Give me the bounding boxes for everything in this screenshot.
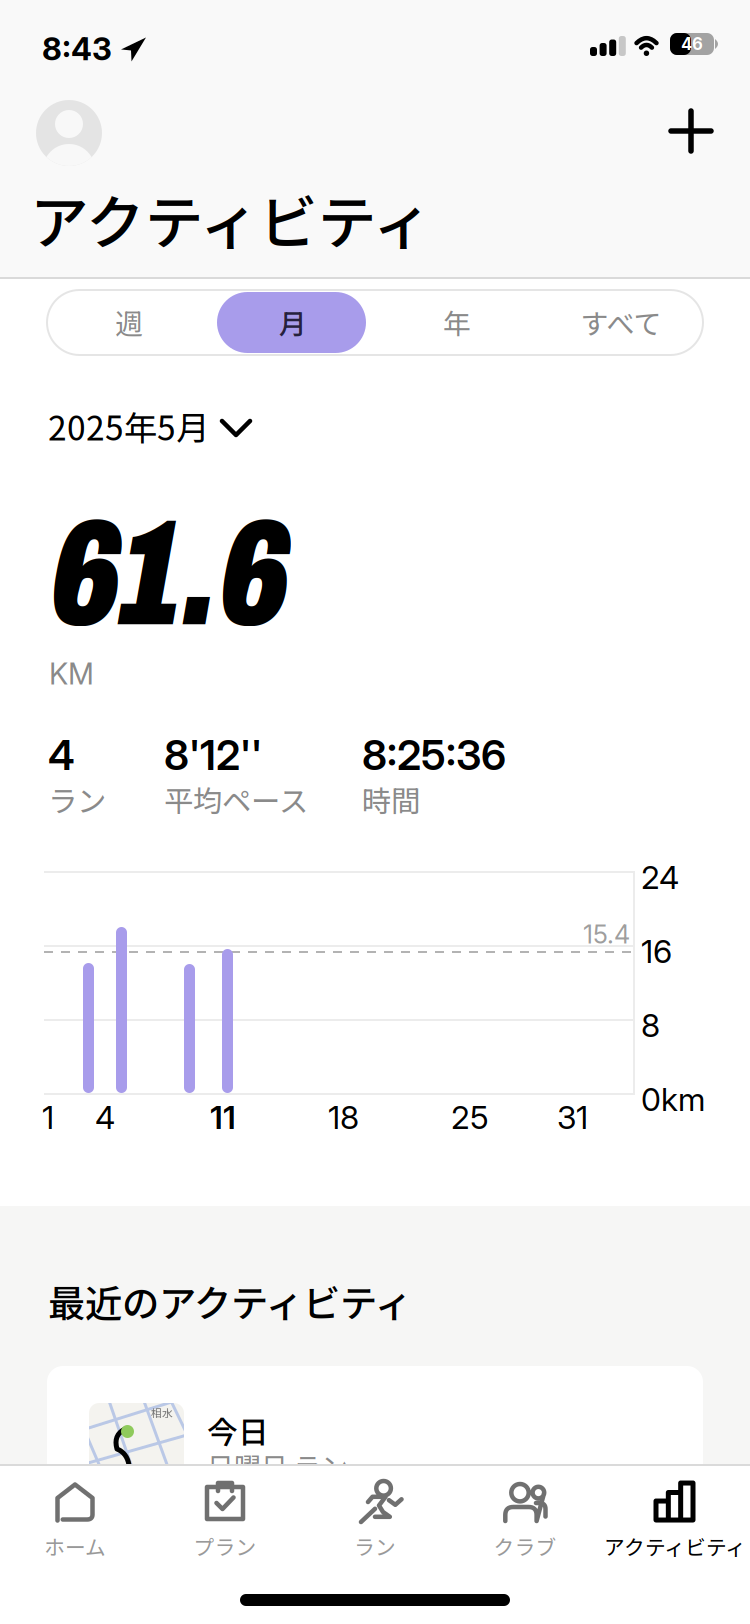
button[interactable]: ホーム xyxy=(0,1480,150,1592)
staticText: KM xyxy=(49,656,94,691)
button[interactable]: 相水 xyxy=(47,1366,703,1576)
staticText: 16 xyxy=(641,932,672,971)
staticText: 日曜日 ラン xyxy=(207,1446,348,1485)
staticText: 24 xyxy=(641,858,679,897)
staticText: 0km xyxy=(641,1080,705,1119)
button[interactable]: 2025年5月 xyxy=(30,397,268,455)
staticText: 8:25:36 xyxy=(362,730,506,780)
staticText: 年 xyxy=(443,302,471,342)
staticText: 8:43 xyxy=(42,30,112,68)
staticText: 25 xyxy=(451,1098,489,1137)
button[interactable]: プラン xyxy=(150,1480,300,1592)
staticText: 31 xyxy=(557,1098,588,1137)
staticText: クラブ xyxy=(493,1531,556,1561)
button[interactable]: プロフィール xyxy=(36,100,102,166)
button[interactable]: アクティビティ xyxy=(590,1480,750,1592)
staticText: 1 xyxy=(42,1098,54,1137)
staticText: アクティビティ xyxy=(30,176,432,261)
button[interactable]: 週 xyxy=(47,290,211,354)
staticText: 8'12'' xyxy=(164,730,262,780)
staticText: ホーム xyxy=(44,1531,106,1561)
button[interactable]: ラン xyxy=(300,1480,450,1592)
staticText: 相水 xyxy=(151,1405,173,1420)
staticText: 18 xyxy=(328,1098,359,1137)
staticText: アクティビティ xyxy=(604,1531,746,1561)
staticText: 4 xyxy=(95,1098,115,1137)
staticText: 61.6 xyxy=(50,492,290,656)
staticText: すべて xyxy=(580,302,661,342)
staticText: 週 xyxy=(115,302,143,342)
staticText: 8 xyxy=(641,1006,660,1045)
staticText: プラン xyxy=(193,1531,256,1561)
staticText: 2025年5月 xyxy=(48,402,209,450)
staticText: 月 xyxy=(279,302,307,342)
button[interactable]: 追加 xyxy=(661,101,721,161)
staticText: 15.4 xyxy=(583,919,630,950)
staticText: 4 xyxy=(48,730,75,780)
staticText: 今日 xyxy=(207,1408,269,1452)
staticText: ラン xyxy=(48,778,106,820)
staticText: ラン xyxy=(354,1531,396,1561)
staticText: 11 xyxy=(210,1098,236,1137)
button[interactable]: すべて xyxy=(539,290,703,354)
staticText: 時間 xyxy=(362,778,420,820)
button[interactable]: 年 xyxy=(375,290,539,354)
staticText: 最近のアクティビティ xyxy=(48,1274,412,1328)
button[interactable]: クラブ xyxy=(450,1480,600,1592)
button[interactable]: 月 xyxy=(211,290,375,354)
staticText: 平均ペース xyxy=(164,778,308,820)
staticText: 46 xyxy=(681,34,703,54)
